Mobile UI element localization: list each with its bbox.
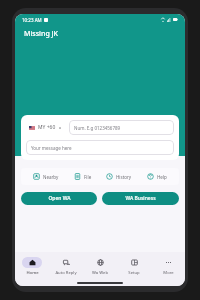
button[interactable]: Setup (117, 252, 151, 280)
staticText: Help (157, 174, 167, 180)
staticText: Missing JK (24, 29, 59, 39)
staticText: Setup (128, 270, 140, 276)
staticText: History (116, 174, 132, 180)
staticText: Open WA (48, 195, 71, 202)
staticText: File (84, 174, 92, 180)
button[interactable]: WA Business (102, 192, 179, 205)
other: Setup (131, 259, 138, 266)
other: Home (29, 259, 36, 266)
staticText: Num. E.g 0123456789 (74, 125, 121, 131)
other: Auto Reply (63, 259, 70, 266)
staticText: 10:23 AM (22, 17, 42, 23)
other: More (165, 259, 172, 266)
staticText: WA Business (125, 195, 156, 202)
button[interactable]: Wa Web (83, 252, 117, 280)
button[interactable]: Home (15, 252, 49, 280)
staticText: Home (26, 270, 39, 276)
button[interactable]: More (151, 252, 185, 280)
button[interactable]: Your message here (26, 140, 174, 155)
staticText: Your message here (31, 145, 72, 151)
button[interactable]: Num. E.g 0123456789 (69, 120, 174, 135)
other: Wa Web (97, 259, 104, 266)
button[interactable]: MY +60 (26, 121, 65, 134)
button[interactable]: Nearby (31, 172, 61, 181)
button[interactable]: Open WA (21, 192, 97, 205)
button[interactable]: File (72, 172, 94, 181)
staticText: Wa Web (92, 270, 108, 276)
staticText: MY +60 (38, 124, 56, 131)
button[interactable]: History (104, 172, 134, 181)
staticText: More (163, 270, 174, 276)
staticText: Nearby (43, 174, 59, 180)
staticText: Auto Reply (55, 270, 77, 276)
button[interactable]: Help (145, 172, 169, 181)
button[interactable]: Auto Reply (49, 252, 83, 280)
